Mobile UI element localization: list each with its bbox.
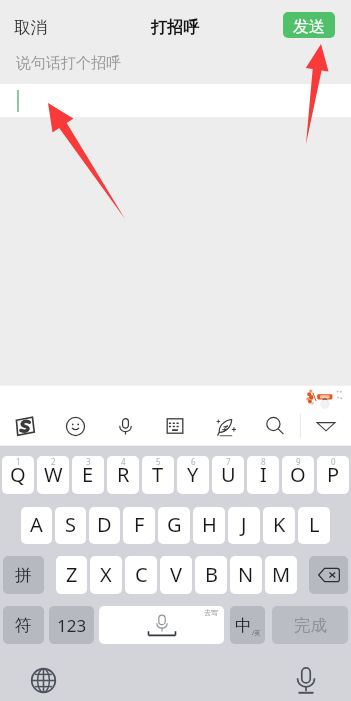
- staticText: P: [327, 461, 340, 488]
- button[interactable]: A: [21, 507, 52, 544]
- staticText: M: [272, 561, 291, 588]
- button[interactable]: Change language: [27, 664, 60, 697]
- button[interactable]: Backspace: [309, 556, 348, 594]
- button[interactable]: Sogou input: [0, 407, 50, 445]
- button[interactable]: 1: [2, 456, 34, 494]
- button[interactable]: 拼: [3, 556, 44, 594]
- button[interactable]: 中: [230, 606, 265, 644]
- button[interactable]: Emoji: [50, 407, 100, 445]
- staticText: O: [290, 461, 306, 488]
- staticText: 3: [86, 456, 91, 467]
- button[interactable]: Hide keyboard: [301, 407, 351, 445]
- staticText: F: [134, 511, 145, 538]
- button[interactable]: 2: [37, 456, 69, 494]
- staticText: B: [205, 561, 218, 588]
- staticText: 0: [331, 456, 336, 467]
- staticText: 完成: [294, 615, 327, 636]
- button[interactable]: Keyboard layout: [150, 407, 200, 445]
- button[interactable]: 0: [317, 456, 349, 494]
- button[interactable]: Z: [56, 556, 87, 594]
- staticText: 4: [121, 456, 126, 467]
- button[interactable]: H: [193, 507, 225, 544]
- staticText: 取消: [14, 17, 47, 38]
- staticText: E: [82, 461, 94, 488]
- staticText: Q: [10, 461, 26, 488]
- staticText: H: [202, 511, 217, 538]
- staticText: 6: [191, 456, 196, 467]
- staticText: V: [170, 561, 182, 588]
- button[interactable]: M: [265, 556, 297, 594]
- staticText: Z: [66, 561, 78, 588]
- button[interactable]: 4: [107, 456, 139, 494]
- staticText: D: [97, 511, 112, 538]
- staticText: I: [260, 461, 267, 488]
- button[interactable]: 5: [142, 456, 174, 494]
- button[interactable]: Handwriting: [200, 407, 250, 445]
- button[interactable]: Space: [99, 606, 224, 644]
- staticText: N: [238, 561, 254, 588]
- button[interactable]: Voice input: [100, 407, 150, 445]
- staticText: U: [221, 461, 236, 488]
- button[interactable]: V: [160, 556, 192, 594]
- button[interactable]: 9: [282, 456, 314, 494]
- staticText: 8: [261, 456, 266, 467]
- staticText: 1: [16, 456, 21, 467]
- staticText: X: [100, 561, 112, 588]
- staticText: 去写: [204, 608, 218, 617]
- staticText: 发送: [293, 17, 325, 37]
- staticText: 拼: [15, 565, 32, 586]
- staticText: 中: [235, 615, 252, 636]
- staticText: K: [273, 511, 286, 538]
- button[interactable]: N: [230, 556, 262, 594]
- button[interactable]: D: [89, 507, 120, 544]
- button[interactable]: F: [123, 507, 155, 544]
- staticText: J: [241, 511, 247, 538]
- staticText: G: [167, 511, 182, 538]
- staticText: 2: [51, 456, 56, 467]
- staticText: S: [65, 511, 76, 538]
- button[interactable]: G: [158, 507, 190, 544]
- staticText: 123: [57, 614, 87, 637]
- staticText: 符: [15, 615, 32, 636]
- button[interactable]: Voice input: [293, 663, 319, 698]
- button[interactable]: 123: [49, 606, 94, 644]
- staticText: W: [44, 461, 63, 488]
- staticText: Y: [187, 461, 199, 488]
- button[interactable]: S: [55, 507, 86, 544]
- button[interactable]: Search: [250, 407, 300, 445]
- staticText: /英: [252, 629, 261, 637]
- button[interactable]: 发送: [283, 12, 335, 38]
- button[interactable]: 8: [247, 456, 279, 494]
- staticText: C: [135, 561, 148, 588]
- button[interactable]: K: [263, 507, 295, 544]
- staticText: T: [152, 461, 164, 488]
- button[interactable]: 6: [177, 456, 209, 494]
- staticText: 9: [296, 456, 301, 467]
- staticText: 打招呼: [151, 18, 199, 38]
- button[interactable]: J: [228, 507, 260, 544]
- button[interactable]: B: [195, 556, 227, 594]
- staticText: A: [30, 511, 43, 538]
- staticText: 说句话打个招呼: [16, 54, 121, 73]
- staticText: R: [117, 461, 130, 488]
- staticText: 5: [156, 456, 161, 467]
- button[interactable]: 完成: [272, 606, 348, 644]
- button[interactable]: X: [90, 556, 122, 594]
- button[interactable]: 符: [3, 606, 44, 644]
- button[interactable]: 7: [212, 456, 244, 494]
- button[interactable]: L: [298, 507, 330, 544]
- button[interactable]: 取消: [6, 9, 55, 46]
- staticText: L: [309, 511, 320, 538]
- button[interactable]: C: [125, 556, 157, 594]
- staticText: 7: [226, 456, 231, 467]
- button[interactable]: 3: [72, 456, 104, 494]
